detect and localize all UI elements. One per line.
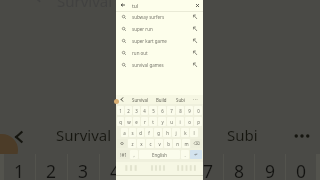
button[interactable]: r <box>141 117 148 126</box>
button[interactable]: l <box>190 128 198 137</box>
button[interactable]: !#1 <box>117 150 129 159</box>
button[interactable]: z <box>128 139 136 148</box>
button[interactable]: English <box>139 150 180 159</box>
staticText: ↵ <box>194 152 198 157</box>
staticText: ⌫ <box>193 141 200 146</box>
button[interactable]: 1 <box>4 154 35 180</box>
button[interactable]: 3 <box>133 106 140 115</box>
staticText: 1 <box>14 159 25 180</box>
button[interactable]: Survival <box>132 97 149 103</box>
staticText: u <box>170 119 173 125</box>
staticText: 8 <box>179 108 182 114</box>
button[interactable]: w <box>125 117 132 126</box>
staticText: 7 <box>170 108 173 114</box>
button[interactable]: n <box>173 139 181 148</box>
staticText: g <box>157 130 160 136</box>
staticText: 6 <box>172 159 183 180</box>
button[interactable]: . <box>181 150 189 159</box>
button[interactable]: 3 <box>68 154 99 180</box>
staticText: 6 <box>161 108 164 114</box>
button[interactable]: k <box>181 128 189 137</box>
button[interactable]: More options <box>288 124 316 148</box>
button[interactable]: 7 <box>167 106 175 115</box>
button[interactable]: d <box>137 128 144 137</box>
button[interactable]: 2 <box>36 154 67 180</box>
button[interactable]: Recents <box>124 164 138 172</box>
staticText: 2 <box>46 159 57 180</box>
button[interactable]: 6 <box>158 106 166 115</box>
button[interactable]: Subi <box>176 97 185 103</box>
button[interactable]: h <box>163 128 171 137</box>
button[interactable]: c <box>146 139 154 148</box>
button[interactable]: f <box>145 128 153 137</box>
staticText: c <box>149 141 152 147</box>
button[interactable]: y <box>158 117 166 126</box>
button[interactable]: b <box>164 139 172 148</box>
staticText: b <box>167 141 170 147</box>
staticText: x <box>140 141 143 147</box>
staticText: Survival ga <box>57 0 134 11</box>
button[interactable]: subway surfers <box>116 11 203 23</box>
button[interactable]: o <box>185 117 193 126</box>
button[interactable]: 9 <box>255 154 285 180</box>
button[interactable]: super run <box>116 23 203 35</box>
button[interactable]: s <box>129 128 136 137</box>
button[interactable]: survival games <box>116 59 203 71</box>
button[interactable]: q <box>117 117 124 126</box>
button[interactable]: Subi <box>227 125 258 145</box>
button[interactable]: 5 <box>149 106 157 115</box>
button[interactable]: m <box>182 139 190 148</box>
staticText: q <box>119 119 122 125</box>
button[interactable]: 5 <box>131 154 161 180</box>
button[interactable]: 7 <box>193 154 223 180</box>
staticText: , <box>133 152 135 158</box>
staticText: y <box>161 119 164 125</box>
button[interactable]: t <box>149 117 157 126</box>
staticText: tul <box>132 3 139 10</box>
staticText: English <box>152 152 167 158</box>
button[interactable]: g <box>154 128 162 137</box>
button[interactable]: Build <box>156 97 167 103</box>
button[interactable]: 0 <box>286 154 316 180</box>
button[interactable]: Home <box>150 164 166 172</box>
button[interactable]: 1 <box>117 106 124 115</box>
staticText: 2 <box>127 108 130 114</box>
button[interactable]: ⋯ <box>193 96 198 102</box>
button[interactable]: j <box>172 128 180 137</box>
staticText: r <box>144 119 146 125</box>
button[interactable]: u <box>167 117 175 126</box>
staticText: f <box>148 130 150 136</box>
button[interactable]: x <box>137 139 145 148</box>
staticText: d <box>139 130 142 136</box>
staticText: j <box>175 130 177 136</box>
button[interactable]: ⌫ <box>191 139 202 148</box>
button[interactable]: Survival <box>56 125 112 145</box>
staticText: 9 <box>188 108 191 114</box>
button[interactable]: 4 <box>141 106 148 115</box>
button[interactable]: 6 <box>162 154 192 180</box>
button[interactable]: Previous suggestion <box>8 126 30 148</box>
button[interactable]: run out <box>116 47 203 59</box>
staticText: m <box>184 141 189 147</box>
button[interactable]: , <box>130 150 138 159</box>
button[interactable]: Back <box>116 0 203 11</box>
button[interactable]: Back <box>176 164 197 172</box>
staticText: 7 <box>203 159 214 180</box>
button[interactable]: e <box>133 117 140 126</box>
button[interactable]: 8 <box>224 154 254 180</box>
button[interactable]: v <box>155 139 163 148</box>
button[interactable]: i <box>176 117 184 126</box>
button[interactable]: 8 <box>176 106 184 115</box>
button[interactable]: 9 <box>185 106 193 115</box>
button[interactable]: p <box>194 117 202 126</box>
button[interactable]: 4 <box>100 154 130 180</box>
staticText: k <box>184 130 187 136</box>
button[interactable]: 0 <box>194 106 202 115</box>
button[interactable]: 2 <box>125 106 132 115</box>
staticText: super run <box>132 26 153 32</box>
button[interactable]: ↵ <box>190 150 202 159</box>
button[interactable]: Clear search <box>195 3 200 8</box>
button[interactable]: ⚙ <box>117 139 127 148</box>
button[interactable]: super kart game <box>116 35 203 47</box>
button[interactable]: a <box>121 128 128 137</box>
